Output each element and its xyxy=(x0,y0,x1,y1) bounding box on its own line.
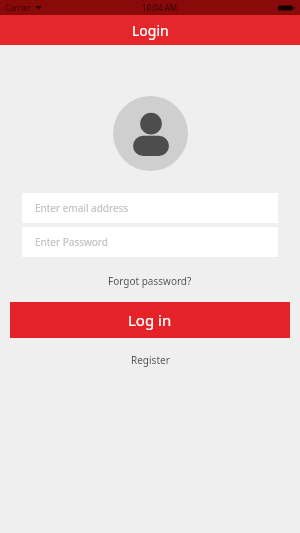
staticText: Register xyxy=(131,353,170,367)
button[interactable]: Enter Password xyxy=(22,227,278,257)
button[interactable]: Log in xyxy=(10,302,290,338)
staticText: Enter Password xyxy=(35,235,108,249)
staticText: Carrier xyxy=(5,2,32,13)
staticText: Forgot password? xyxy=(108,274,192,288)
staticText: Log in xyxy=(128,310,172,330)
button[interactable]: Enter email address xyxy=(22,193,278,223)
staticText: Enter email address xyxy=(35,201,129,215)
staticText: 10:04 AM xyxy=(142,2,178,13)
staticText: Login xyxy=(132,21,169,40)
button[interactable]: Register xyxy=(125,350,176,370)
button[interactable]: Forgot password? xyxy=(102,271,198,291)
